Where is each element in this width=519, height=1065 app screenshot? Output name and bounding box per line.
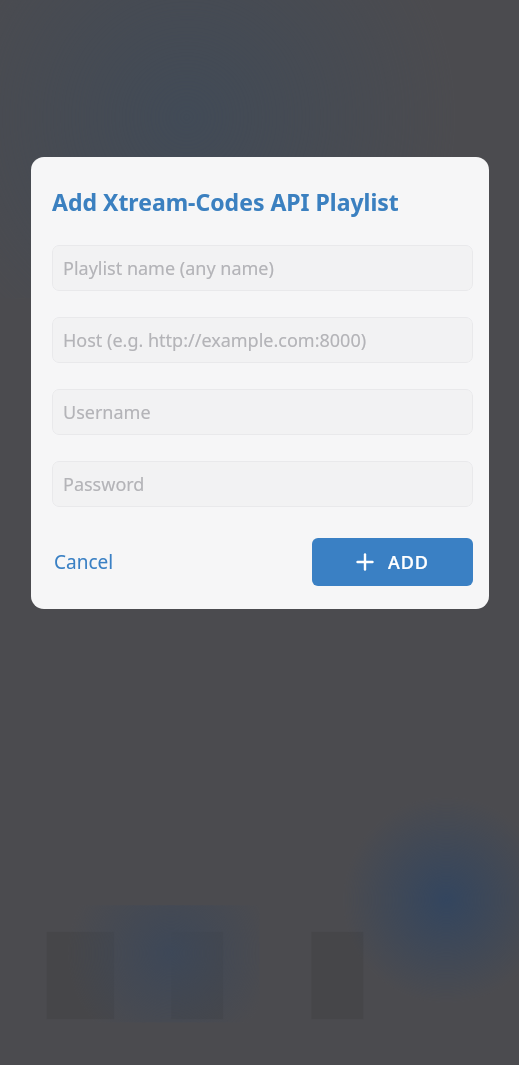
staticText: Cancel <box>54 549 114 575</box>
staticText: Host (e.g. http://example.com:8000) <box>63 328 367 353</box>
staticText: Username <box>63 400 151 425</box>
button[interactable]: Cancel <box>52 542 116 582</box>
button[interactable]: Username <box>52 389 473 435</box>
other: Add <box>356 553 374 571</box>
staticText: Playlist name (any name) <box>63 256 274 281</box>
button[interactable]: Host (e.g. http://example.com:8000) <box>52 317 473 363</box>
staticText: Add Xtream-Codes API Playlist <box>52 186 399 217</box>
button[interactable]: Add <box>312 538 473 586</box>
button[interactable]: Playlist name (any name) <box>52 245 473 291</box>
staticText: ADD <box>388 550 429 575</box>
staticText: Password <box>63 472 145 497</box>
button[interactable]: Password <box>52 461 473 507</box>
